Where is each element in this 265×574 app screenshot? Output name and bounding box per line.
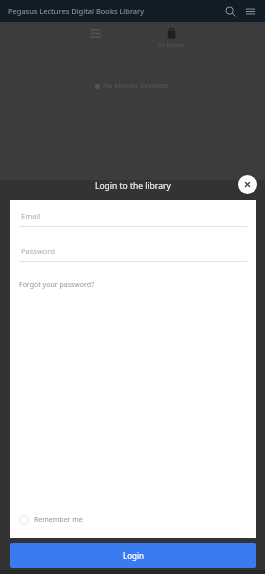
button[interactable]: My list <box>67 22 123 55</box>
staticText: Forgot your password? <box>19 280 95 290</box>
button[interactable]: Menu <box>241 2 259 20</box>
staticText: Remember me <box>34 515 83 525</box>
staticText: Login to the library <box>95 180 171 192</box>
staticText: All Books <box>158 41 184 49</box>
button[interactable]: Close <box>238 175 257 194</box>
button[interactable]: Login <box>10 543 256 568</box>
staticText: Email <box>21 211 41 221</box>
staticText: Login <box>123 550 144 561</box>
button[interactable]: Search <box>221 2 239 20</box>
staticText: No ebooks available <box>103 81 170 91</box>
button[interactable]: Remember me <box>19 513 83 527</box>
button[interactable]: All Books <box>143 22 199 55</box>
button[interactable]: Email <box>19 206 247 226</box>
staticText: Password <box>21 246 55 256</box>
button[interactable]: Forgot your password? <box>19 279 95 291</box>
staticText: Pegasus Lectures Digital Books Library <box>8 6 144 16</box>
button[interactable]: Password <box>19 241 247 261</box>
